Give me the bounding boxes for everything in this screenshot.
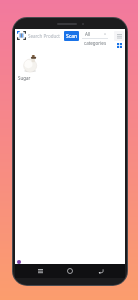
button[interactable]: Grid view [115,43,124,48]
staticText: categories [84,40,107,46]
button[interactable]: List view [114,31,124,41]
button[interactable]: Account [17,260,21,264]
button[interactable]: Search Product [28,31,63,40]
button[interactable]: All [82,31,108,46]
button[interactable]: Recent apps [34,265,46,277]
button[interactable]: Sugar [18,52,44,81]
staticText: Sugar [18,75,44,81]
staticText: All [85,31,91,37]
button[interactable]: Home [64,265,76,277]
button[interactable]: Scan [64,31,79,41]
staticText: Search Product [28,33,60,39]
button[interactable]: Back [95,265,107,277]
staticText: Scan [66,33,78,40]
button[interactable]: Scan barcode [17,31,26,40]
